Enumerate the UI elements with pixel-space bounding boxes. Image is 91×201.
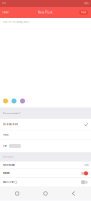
staticText: Who can see this plurk? — [2, 112, 20, 114]
button[interactable]: Adults Only — [0, 178, 91, 186]
staticText: Replyable — [2, 172, 9, 174]
staticText: Adults Only — [2, 181, 13, 183]
button[interactable]: Back — [63, 186, 85, 200]
button[interactable]: Commentable — [0, 162, 91, 169]
button[interactable]: Replyable — [0, 169, 91, 178]
button[interactable]: Photo — [11, 98, 16, 103]
staticText: Friends — [2, 134, 8, 136]
button[interactable]: Recent apps — [6, 186, 28, 200]
button[interactable]: Friends — [0, 130, 91, 140]
staticText: Only — [2, 145, 6, 147]
staticText: New Plurk — [38, 11, 53, 14]
staticText: Commentable — [2, 164, 14, 166]
staticText: Plurk — [81, 11, 86, 14]
button[interactable]: Plurk — [79, 10, 91, 15]
staticText: 11:12 — [2, 2, 6, 5]
staticText: What are you plurking about? — [2, 21, 29, 23]
staticText: 100% — [84, 2, 89, 5]
button[interactable]: Sticker — [20, 98, 25, 103]
staticText: Cancel — [2, 11, 9, 14]
staticText: Other options — [2, 156, 13, 158]
staticText: The whole world — [2, 123, 17, 126]
staticText: Open — [83, 164, 88, 166]
button[interactable]: Cancel — [0, 7, 11, 18]
button[interactable]: Emoticon — [3, 98, 8, 103]
button[interactable]: The whole world — [0, 119, 91, 130]
button[interactable]: Only — [0, 140, 91, 152]
button[interactable]: Home — [34, 186, 56, 200]
